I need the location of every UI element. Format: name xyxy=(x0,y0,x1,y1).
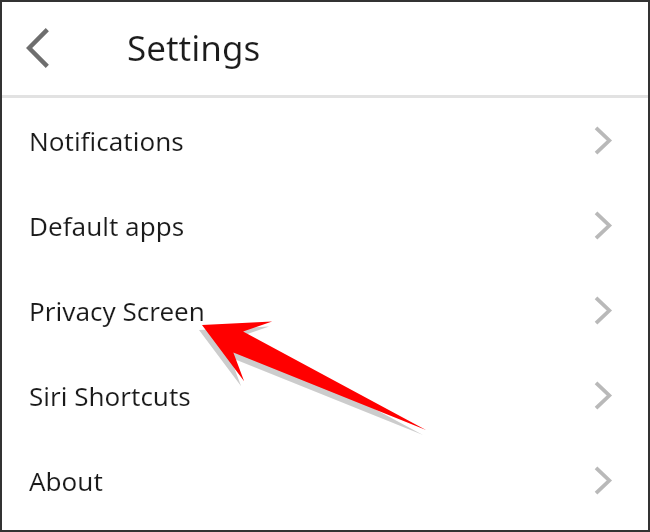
staticText: Notifications xyxy=(29,123,184,158)
staticText: About xyxy=(29,463,103,498)
staticText: Settings xyxy=(127,24,261,72)
staticText: Default apps xyxy=(29,208,185,243)
staticText: Siri Shortcuts xyxy=(29,378,191,413)
staticText: Privacy Screen xyxy=(29,293,205,328)
button[interactable]: Back xyxy=(8,17,70,79)
button[interactable]: Notifications xyxy=(0,98,650,183)
button[interactable]: Default apps xyxy=(0,183,650,268)
button[interactable]: Privacy Screen xyxy=(0,268,650,353)
button[interactable]: Siri Shortcuts xyxy=(0,353,650,438)
button[interactable]: About xyxy=(0,438,650,523)
